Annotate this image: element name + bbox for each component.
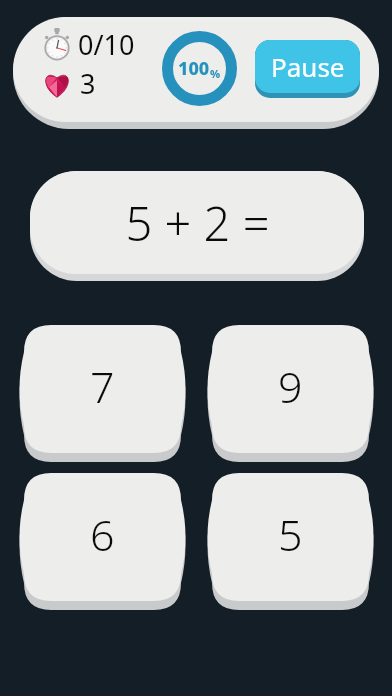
- button[interactable]: 7: [24, 325, 181, 462]
- staticText: 100: [178, 56, 210, 81]
- button[interactable]: 9: [212, 325, 369, 462]
- button[interactable]: 5 + 2 =: [30, 171, 364, 281]
- button[interactable]: Pause: [255, 40, 360, 98]
- staticText: 5 + 2 =: [125, 191, 270, 255]
- other: Lives: [39, 66, 75, 102]
- staticText: 0/10: [78, 26, 135, 63]
- button[interactable]: 6: [24, 473, 181, 610]
- staticText: 5: [278, 505, 303, 564]
- button[interactable]: 5: [212, 473, 369, 610]
- staticText: Pause: [271, 49, 345, 84]
- staticText: %: [210, 66, 221, 81]
- staticText: 6: [90, 505, 115, 564]
- staticText: 7: [90, 357, 115, 416]
- other: Timer: [39, 27, 75, 63]
- staticText: 3: [80, 65, 96, 102]
- staticText: 9: [278, 357, 303, 416]
